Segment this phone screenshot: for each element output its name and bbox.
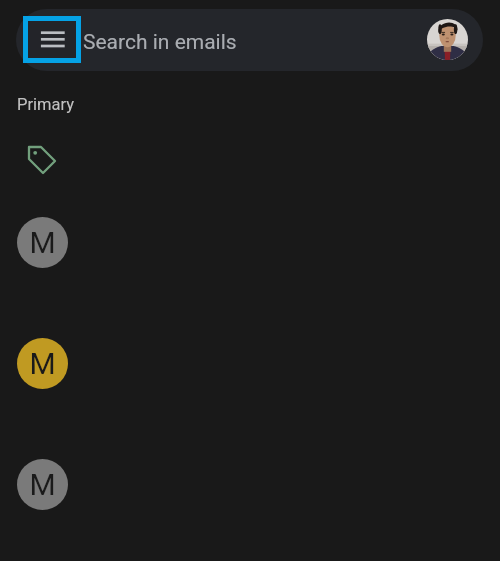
button[interactable]: Conversation from M (0, 182, 500, 303)
staticText: Primary (17, 95, 75, 114)
button[interactable]: Open navigation drawer (28, 21, 76, 58)
button[interactable]: Label (27, 145, 56, 174)
button[interactable]: Account (427, 19, 468, 60)
staticText: Search in emails (83, 30, 237, 55)
staticText: M (29, 346, 56, 381)
button[interactable]: Search in emails (16, 9, 483, 71)
staticText: M (29, 225, 56, 260)
staticText: M (29, 467, 56, 502)
button[interactable]: Conversation from M (0, 424, 500, 545)
button[interactable]: Conversation from M (0, 303, 500, 424)
